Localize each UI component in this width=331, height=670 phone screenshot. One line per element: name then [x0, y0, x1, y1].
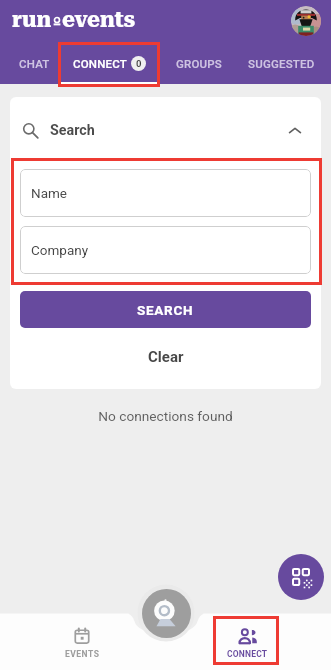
- button[interactable]: SEARCH: [20, 291, 311, 328]
- staticText: Company: [31, 242, 89, 258]
- button[interactable]: Name: [20, 169, 311, 217]
- staticText: Clear: [148, 348, 184, 366]
- staticText: events: [62, 7, 136, 33]
- button[interactable]: Camera: [142, 589, 191, 638]
- button[interactable]: CHAT: [4, 42, 65, 84]
- button[interactable]: Scan QR code: [278, 554, 324, 600]
- staticText: EVENTS: [65, 649, 100, 659]
- staticText: SEARCH: [137, 302, 194, 318]
- staticText: No connections found: [0, 408, 331, 424]
- button[interactable]: Clear: [10, 332, 321, 382]
- staticText: GROUPS: [176, 57, 223, 70]
- button[interactable]: CONNECT: [217, 617, 277, 670]
- button[interactable]: EVENTS: [52, 616, 112, 670]
- button[interactable]: GROUPS: [160, 42, 239, 84]
- staticText: CHAT: [19, 57, 50, 70]
- button[interactable]: Company: [20, 226, 311, 274]
- staticText: run: [12, 7, 52, 33]
- staticText: Search: [50, 122, 95, 139]
- button[interactable]: Search: [22, 102, 309, 158]
- staticText: CONNECT: [227, 649, 268, 659]
- staticText: 0: [136, 58, 142, 69]
- staticText: CONNECT: [73, 57, 127, 70]
- staticText: Name: [31, 185, 67, 201]
- button[interactable]: Profile: [291, 6, 321, 36]
- button[interactable]: CONNECT: [58, 42, 160, 84]
- staticText: SUGGESTED: [248, 57, 315, 70]
- button[interactable]: SUGGESTED: [239, 42, 323, 84]
